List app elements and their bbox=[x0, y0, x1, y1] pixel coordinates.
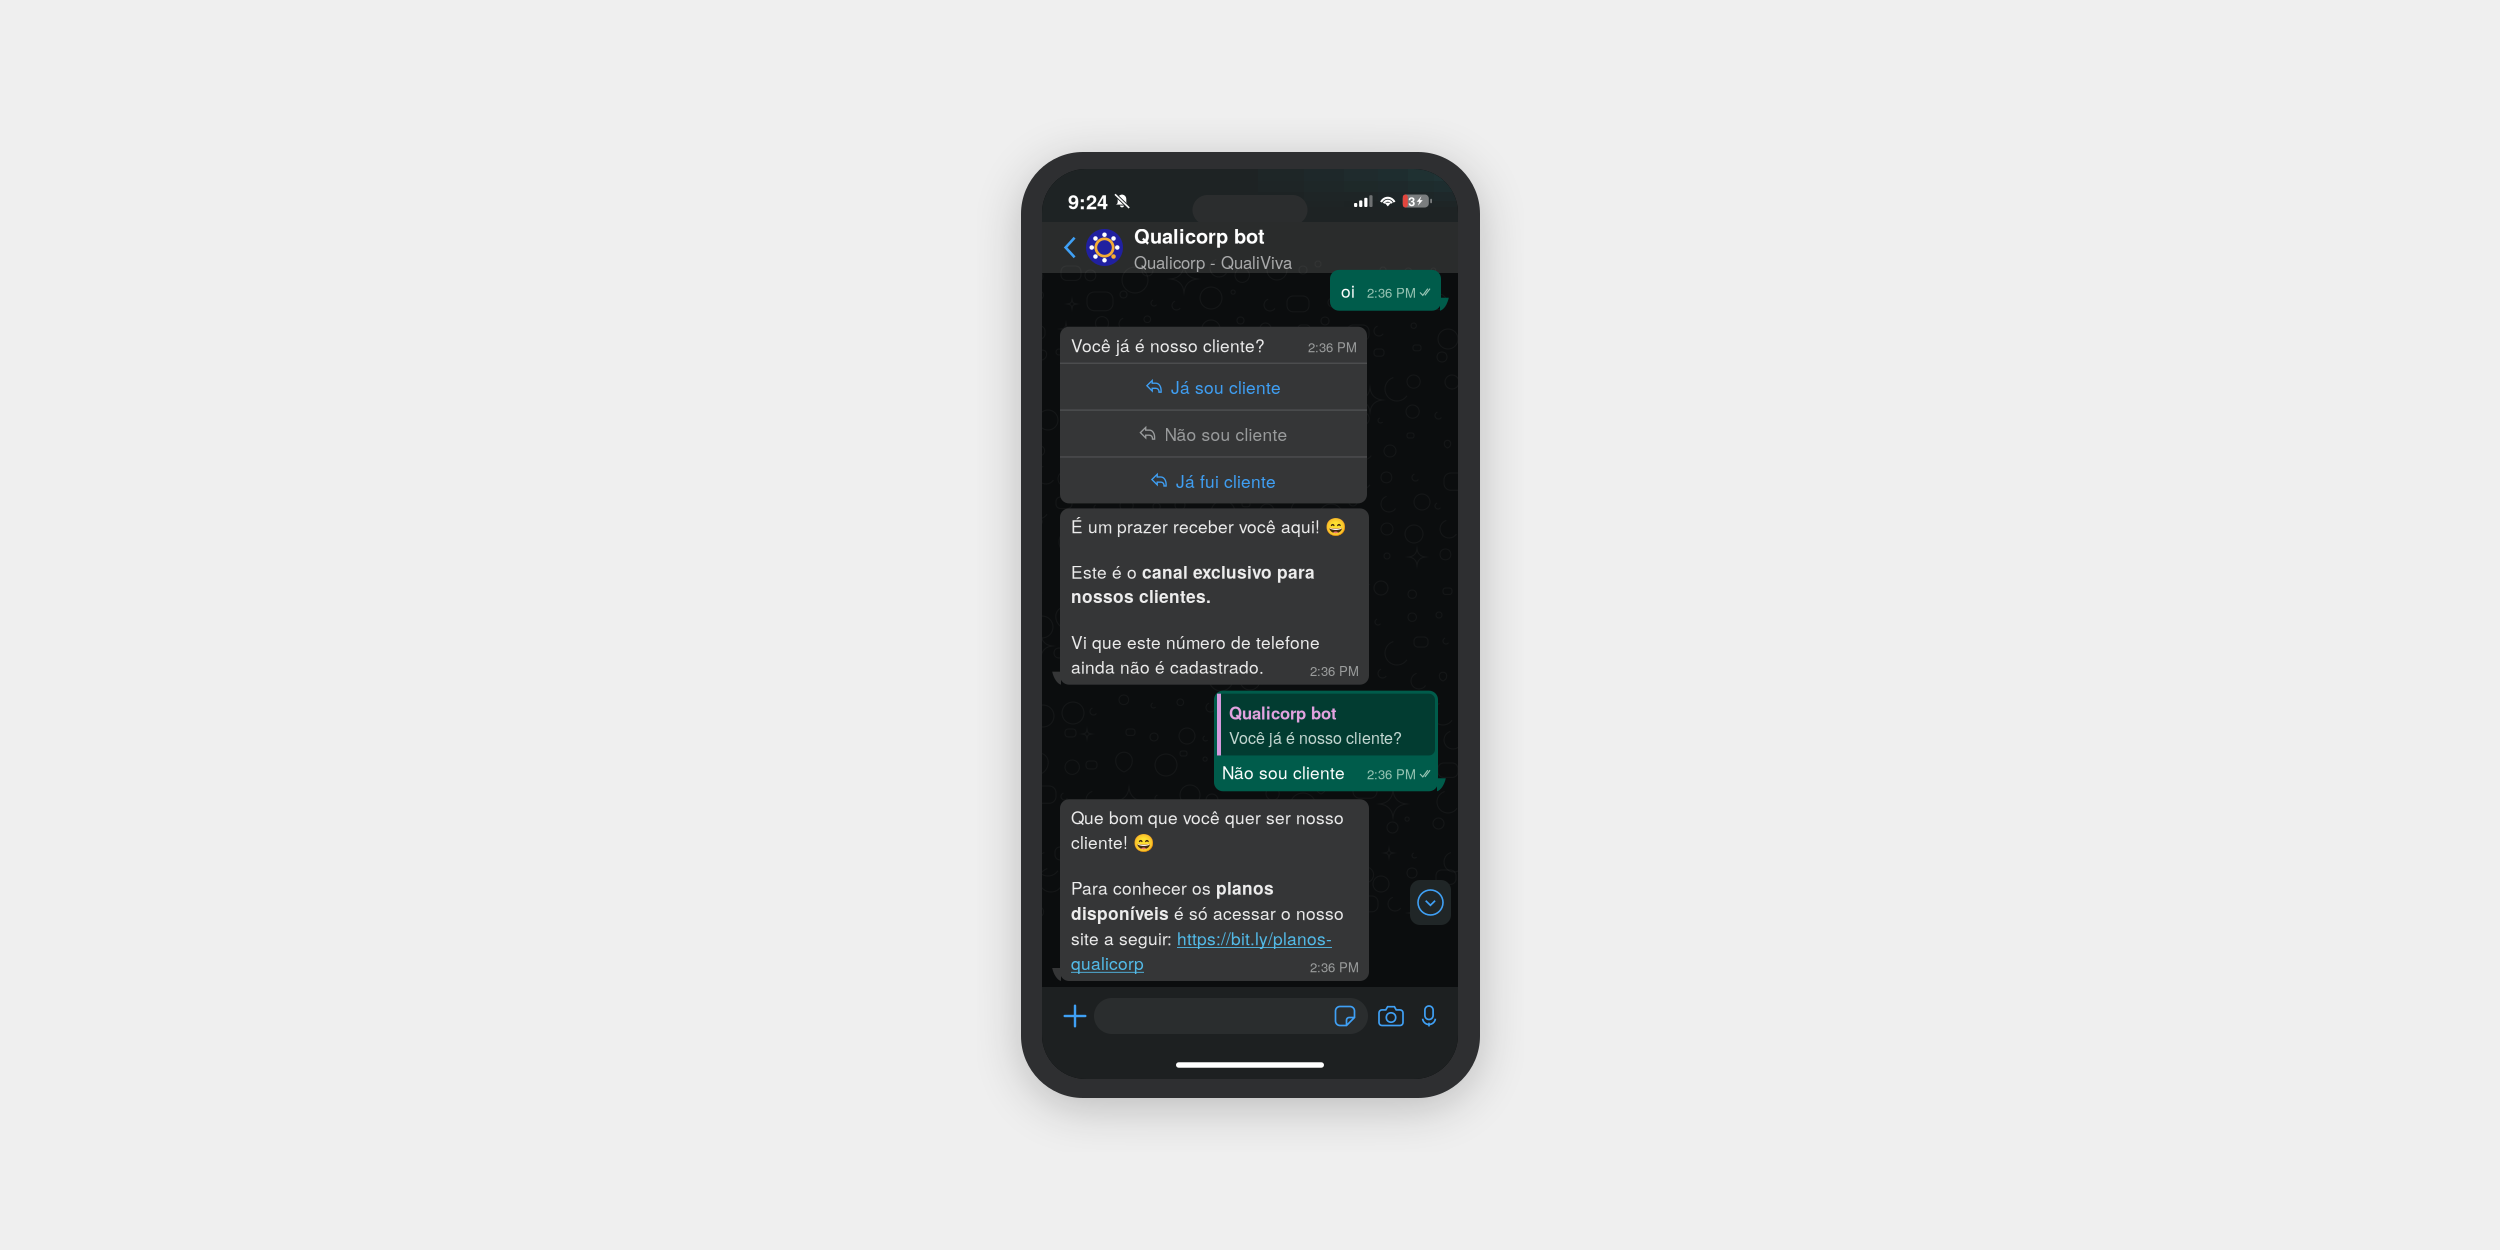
button[interactable]: Já sou cliente bbox=[1060, 364, 1367, 410]
staticText: 2:36 PM bbox=[1308, 337, 1357, 356]
staticText: Para conhecer os planos disponíveis é só… bbox=[1071, 875, 1344, 975]
staticText: Já sou cliente bbox=[1171, 374, 1281, 399]
staticText: Qualicorp - QualiViva bbox=[1134, 250, 1292, 274]
staticText: Que bom que você quer ser nosso cliente!… bbox=[1071, 804, 1344, 854]
staticText: 9:24 bbox=[1068, 187, 1108, 215]
staticText: É um prazer receber você aqui! 😄 bbox=[1071, 513, 1347, 538]
staticText: Você já é nosso cliente? bbox=[1229, 725, 1402, 748]
staticText: Você já é nosso cliente? bbox=[1071, 332, 1265, 357]
staticText: 2:36 PM bbox=[1367, 283, 1416, 301]
staticText: 3 bbox=[1408, 192, 1415, 210]
button[interactable]: Não sou cliente bbox=[1060, 410, 1367, 456]
button[interactable]: Já fui cliente bbox=[1060, 457, 1367, 503]
staticText: 2:36 PM bbox=[1367, 764, 1416, 783]
staticText: Vi que este número de telefone ainda não… bbox=[1071, 629, 1320, 679]
staticText: Não sou cliente bbox=[1164, 421, 1287, 446]
button[interactable]: Voice message bbox=[1414, 995, 1444, 1037]
staticText: Não sou cliente bbox=[1222, 759, 1345, 784]
staticText: Qualicorp bot bbox=[1229, 701, 1337, 725]
button[interactable]: Back bbox=[1054, 222, 1086, 273]
button[interactable]: Attach bbox=[1056, 995, 1094, 1037]
button[interactable]: Camera bbox=[1368, 995, 1414, 1037]
button[interactable]: Scroll to bottom bbox=[1410, 880, 1451, 925]
staticText: 2:36 PM bbox=[1310, 957, 1359, 976]
staticText: Já fui cliente bbox=[1176, 468, 1276, 493]
staticText: 2:36 PM bbox=[1310, 661, 1359, 680]
staticText: Este é o canal exclusivo para nossos cli… bbox=[1071, 559, 1315, 608]
staticText: oi bbox=[1341, 278, 1355, 303]
staticText: Qualicorp bot bbox=[1134, 221, 1265, 250]
button[interactable]: Qualicorp bot bbox=[1086, 222, 1444, 273]
button[interactable]: Stickers bbox=[1328, 998, 1362, 1034]
